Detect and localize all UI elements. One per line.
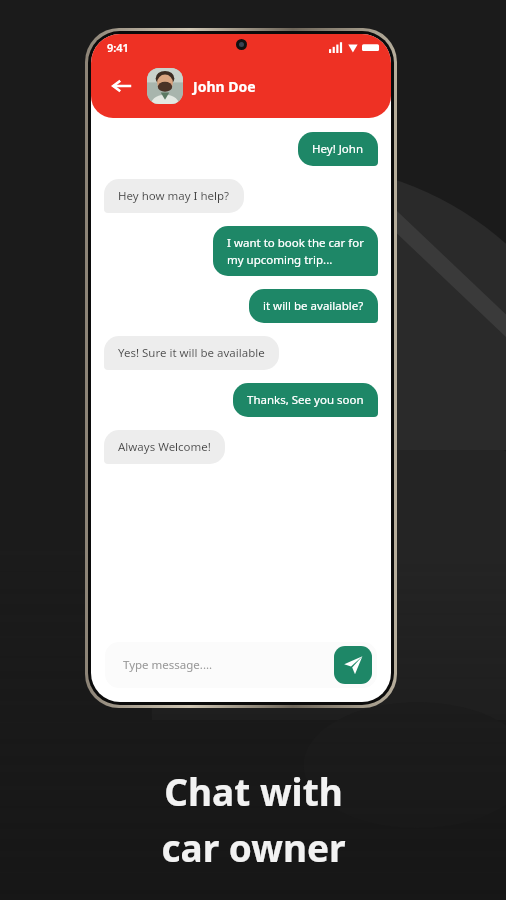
- staticText: Type message....: [123, 657, 213, 673]
- button[interactable]: Thanks, See you soon: [233, 383, 378, 417]
- staticText: it will be available?: [263, 298, 364, 314]
- button[interactable]: Yes! Sure it will be available: [104, 336, 279, 370]
- staticText: Thanks, See you soon: [247, 392, 364, 408]
- staticText: 9:41: [107, 40, 129, 55]
- staticText: Hey how may I help?: [118, 188, 230, 204]
- button[interactable]: Type message....: [105, 642, 377, 688]
- button[interactable]: Back: [105, 69, 139, 103]
- staticText: John Doe: [193, 77, 256, 96]
- button[interactable]: Always Welcome!: [104, 430, 225, 464]
- button[interactable]: I want to book the car for my upcoming t…: [213, 226, 378, 276]
- staticText: Hey! John: [312, 141, 364, 157]
- button[interactable]: Hey! John: [298, 132, 378, 166]
- button[interactable]: Send: [334, 646, 372, 684]
- staticText: I want to book the car for my upcoming t…: [227, 235, 364, 267]
- button[interactable]: it will be available?: [249, 289, 378, 323]
- button[interactable]: Hey how may I help?: [104, 179, 244, 213]
- staticText: Always Welcome!: [118, 439, 211, 455]
- staticText: Chat with: [164, 766, 343, 816]
- staticText: car owner: [161, 822, 346, 872]
- staticText: Yes! Sure it will be available: [118, 345, 265, 361]
